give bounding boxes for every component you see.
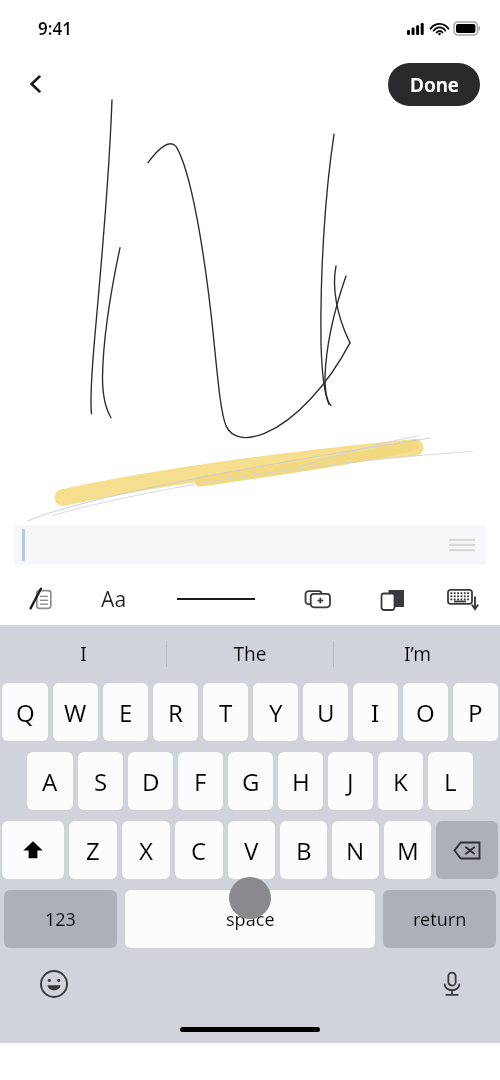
button[interactable]: M <box>384 821 431 879</box>
staticText: Q <box>16 696 35 729</box>
button[interactable]: Hide keyboard <box>440 576 486 622</box>
staticText: Y <box>269 696 283 729</box>
button[interactable]: Back <box>14 62 58 106</box>
button[interactable]: I <box>0 625 166 683</box>
staticText: C <box>191 834 207 867</box>
button[interactable]: The <box>167 625 333 683</box>
staticText: O <box>416 696 435 729</box>
staticText: return <box>413 907 467 932</box>
button[interactable]: return <box>383 890 496 948</box>
button[interactable]: W <box>53 683 98 741</box>
staticText: space <box>226 907 275 932</box>
button[interactable]: P <box>453 683 498 741</box>
button[interactable]: U <box>303 683 348 741</box>
staticText: T <box>219 696 233 729</box>
button[interactable]: H <box>278 752 323 810</box>
button[interactable]: Q <box>2 683 48 741</box>
button[interactable]: D <box>128 752 173 810</box>
staticText: W <box>64 696 87 729</box>
button[interactable] <box>14 525 486 565</box>
button[interactable]: R <box>153 683 198 741</box>
button[interactable]: Text format <box>92 577 136 621</box>
staticText: H <box>292 765 310 798</box>
staticText: G <box>242 765 260 798</box>
button[interactable]: Pages <box>371 578 413 620</box>
staticText: J <box>347 765 354 798</box>
button[interactable]: I <box>353 683 398 741</box>
button[interactable]: G <box>228 752 273 810</box>
staticText: The <box>233 641 267 667</box>
button[interactable]: Y <box>253 683 298 741</box>
staticText: M <box>397 834 419 867</box>
staticText: Z <box>86 834 100 867</box>
staticText: 9:41 <box>38 17 72 40</box>
button[interactable]: T <box>203 683 248 741</box>
button[interactable]: I’m <box>334 625 500 683</box>
button[interactable]: B <box>280 821 327 879</box>
button[interactable]: X <box>122 821 170 879</box>
button[interactable]: F <box>178 752 223 810</box>
button[interactable]: C <box>175 821 223 879</box>
staticText: Aa <box>101 585 127 614</box>
staticText: 123 <box>45 907 76 932</box>
button[interactable]: V <box>228 821 275 879</box>
button[interactable]: E <box>103 683 148 741</box>
button[interactable]: Shift <box>2 821 64 879</box>
staticText: N <box>346 834 365 867</box>
staticText: I <box>80 641 87 667</box>
button[interactable]: A <box>27 752 73 810</box>
button[interactable]: O <box>403 683 448 741</box>
button[interactable]: Dictation <box>428 960 476 1008</box>
staticText: R <box>168 696 183 729</box>
button[interactable]: N <box>332 821 379 879</box>
staticText: U <box>317 696 335 729</box>
button[interactable]: 123 <box>4 890 117 948</box>
staticText: D <box>142 765 160 798</box>
staticText: K <box>393 765 408 798</box>
staticText: X <box>139 834 154 867</box>
staticText: V <box>244 834 259 867</box>
button[interactable]: S <box>78 752 123 810</box>
staticText: I <box>371 696 380 729</box>
button[interactable]: Line style <box>168 579 264 619</box>
button[interactable]: K <box>378 752 423 810</box>
button[interactable]: space <box>125 890 375 948</box>
button[interactable]: J <box>328 752 373 810</box>
button[interactable]: L <box>428 752 473 810</box>
staticText: Done <box>410 72 459 98</box>
button[interactable]: Add page <box>297 578 339 620</box>
button[interactable]: Done <box>388 63 480 106</box>
button[interactable]: Emoji <box>30 960 78 1008</box>
button[interactable]: Z <box>69 821 117 879</box>
staticText: L <box>444 765 457 798</box>
staticText: P <box>468 696 483 729</box>
button[interactable]: Backspace <box>436 821 498 879</box>
staticText: B <box>296 834 312 867</box>
staticText: A <box>42 765 58 798</box>
staticText: F <box>194 765 207 798</box>
button[interactable]: Markup <box>22 579 62 619</box>
staticText: E <box>119 696 133 729</box>
staticText: I’m <box>404 641 431 667</box>
staticText: S <box>94 765 108 798</box>
